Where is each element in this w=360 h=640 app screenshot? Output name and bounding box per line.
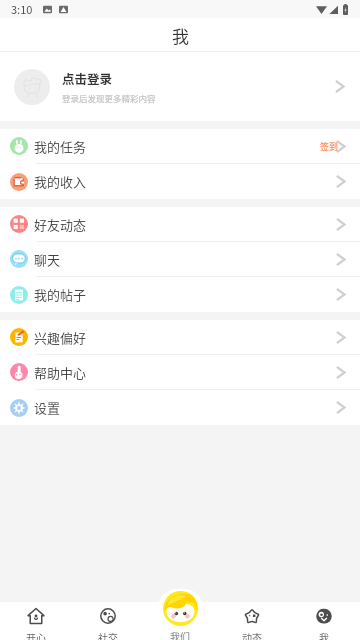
staticText: 动态 [242, 630, 262, 640]
staticText: 好友动态 [34, 215, 87, 234]
button[interactable]: 好友动态 [0, 207, 360, 241]
staticText: 聊天 [34, 250, 61, 269]
staticText: 点击登录 [62, 69, 113, 87]
button[interactable]: 动态 [216, 602, 288, 640]
staticText: 我 [319, 630, 329, 640]
button[interactable]: 开心 [0, 602, 72, 640]
button[interactable]: 帮助中心 [0, 355, 360, 389]
button[interactable]: 兴趣偏好 [0, 320, 360, 354]
button[interactable]: 社交 [72, 602, 144, 640]
staticText: 开心 [26, 630, 46, 640]
staticText: 我们 [170, 629, 190, 640]
staticText: 我 [172, 23, 189, 48]
button[interactable]: 设置 [0, 390, 360, 425]
staticText: 设置 [34, 398, 61, 417]
button[interactable]: 我 [288, 602, 360, 640]
staticText: 签到 [320, 140, 339, 153]
staticText: 我的帖子 [34, 285, 87, 304]
staticText: 兴趣偏好 [34, 328, 87, 347]
staticText: 3:10 [11, 1, 33, 17]
staticText: 登录后发现更多精彩内容 [62, 92, 156, 104]
button[interactable]: 点击登录 [0, 52, 360, 121]
staticText: 我的收入 [34, 172, 87, 191]
button[interactable]: 我们 [163, 591, 198, 626]
button[interactable]: 我的任务 [0, 129, 360, 163]
button[interactable]: 我的帖子 [0, 277, 360, 312]
staticText: 社交 [98, 630, 118, 640]
staticText: 帮助中心 [34, 363, 87, 382]
staticText: 我的任务 [34, 137, 87, 156]
button[interactable]: 聊天 [0, 242, 360, 276]
button[interactable]: 我们 [144, 602, 216, 640]
button[interactable]: 我的收入 [0, 164, 360, 199]
